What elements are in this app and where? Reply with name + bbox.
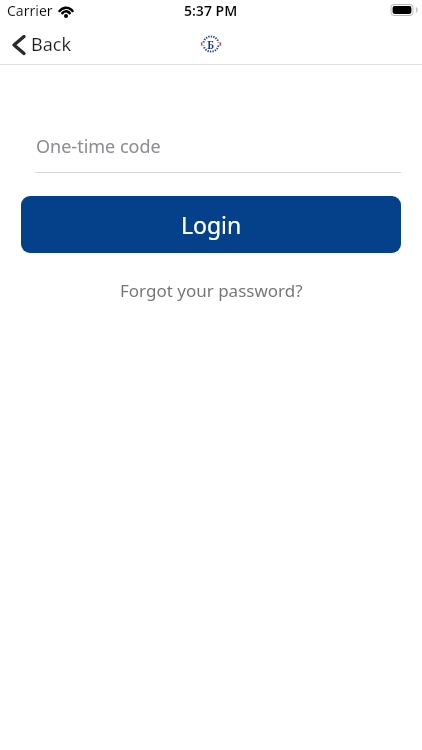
button[interactable]: Back: [0, 32, 72, 57]
staticText: Б: [207, 37, 215, 52]
button[interactable]: One-time code: [35, 128, 401, 173]
staticText: 5:37 PM: [184, 1, 238, 20]
staticText: Login: [181, 209, 242, 240]
staticText: One-time code: [36, 134, 161, 159]
button[interactable]: Forgot your password?: [116, 275, 307, 306]
button[interactable]: Login: [21, 196, 401, 253]
staticText: Back: [31, 32, 72, 57]
staticText: Forgot your password?: [120, 279, 303, 302]
staticText: Carrier: [7, 1, 53, 20]
